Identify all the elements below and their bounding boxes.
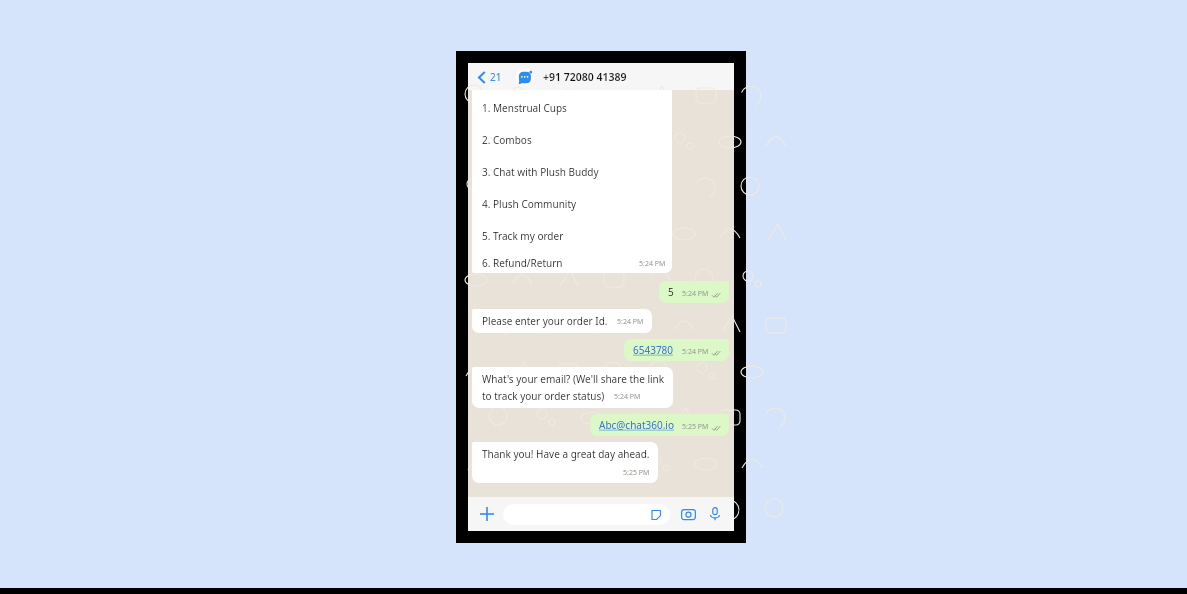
staticText: 6543780 — [633, 343, 674, 357]
button[interactable]: 1. Menstrual Cups — [472, 90, 672, 273]
button[interactable]: Stickers — [503, 504, 670, 525]
button[interactable]: Stickers — [647, 506, 665, 524]
button[interactable]: Please enter your order Id. — [472, 309, 652, 333]
staticText: 5:24 PM — [639, 259, 666, 269]
button[interactable]: Contact profile — [516, 68, 534, 86]
staticText: 2. Combos — [482, 133, 532, 147]
button[interactable]: Camera — [678, 504, 698, 524]
staticText: 5:24 PM — [682, 347, 709, 357]
staticText: 3. Chat with Plush Buddy — [482, 165, 599, 179]
staticText: Please enter your order Id. — [482, 314, 608, 328]
button[interactable]: Thank you! Have a great day ahead. — [472, 442, 658, 483]
staticText: Thank you! Have a great day ahead. — [482, 447, 650, 461]
staticText: to track your order status) — [482, 389, 605, 403]
staticText: +91 72080 41389 — [543, 70, 627, 84]
staticText: 21 — [490, 70, 502, 84]
button[interactable]: Voice message — [705, 504, 725, 524]
button[interactable]: 5 — [659, 281, 729, 303]
button[interactable]: What's your email? (We'll share the link — [472, 367, 673, 408]
staticText: 4. Plush Community — [482, 197, 577, 211]
staticText: 5. Track my order — [482, 229, 564, 243]
button[interactable]: Back, 21 unread — [476, 70, 504, 84]
staticText: 5:24 PM — [614, 392, 641, 402]
staticText: 1. Menstrual Cups — [482, 101, 567, 115]
staticText: 5:25 PM — [682, 422, 709, 432]
staticText: 5:24 PM — [617, 317, 644, 327]
button[interactable]: Attach — [477, 504, 497, 524]
staticText: Abc@chat360.io — [599, 418, 674, 432]
staticText: 5:25 PM — [623, 468, 650, 478]
staticText: 5 — [668, 285, 674, 299]
button[interactable]: 6543780 — [624, 339, 729, 361]
button[interactable]: Abc@chat360.io — [590, 414, 729, 436]
staticText: 5:24 PM — [682, 289, 709, 299]
staticText: 6. Refund/Return — [482, 256, 563, 270]
staticText: What's your email? (We'll share the link — [482, 372, 665, 386]
